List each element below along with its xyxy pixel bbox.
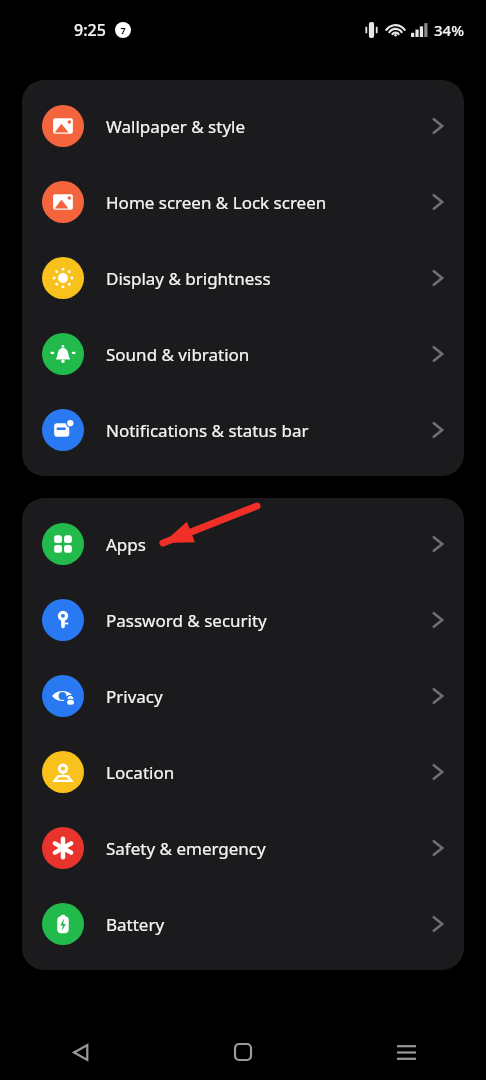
staticText: Notifications & status bar: [106, 419, 432, 442]
button[interactable]: Display & brightness: [22, 240, 464, 316]
button[interactable]: Sound & vibration: [22, 316, 464, 392]
staticText: Wallpaper & style: [106, 115, 432, 138]
staticText: 7: [120, 24, 126, 36]
staticText: Safety & emergency: [106, 837, 432, 860]
staticText: 9:25: [74, 19, 106, 41]
staticText: Apps: [106, 533, 432, 556]
button[interactable]: Location: [22, 734, 464, 810]
button[interactable]: Home: [221, 1030, 265, 1074]
button[interactable]: Battery: [22, 886, 464, 962]
button[interactable]: Privacy: [22, 658, 464, 734]
button[interactable]: Apps: [22, 506, 464, 582]
staticText: Home screen & Lock screen: [106, 191, 432, 214]
button[interactable]: Recents: [384, 1030, 428, 1074]
staticText: Display & brightness: [106, 267, 432, 290]
staticText: Location: [106, 761, 432, 784]
staticText: Sound & vibration: [106, 343, 432, 366]
button[interactable]: Password & security: [22, 582, 464, 658]
staticText: 34%: [434, 20, 464, 40]
button[interactable]: Safety & emergency: [22, 810, 464, 886]
staticText: Battery: [106, 913, 432, 936]
button[interactable]: Notifications & status bar: [22, 392, 464, 468]
button[interactable]: Home screen & Lock screen: [22, 164, 464, 240]
staticText: Settings: [27, 79, 107, 108]
staticText: Privacy: [106, 685, 432, 708]
button[interactable]: Wallpaper & style: [22, 88, 464, 164]
button[interactable]: Back: [58, 1030, 102, 1074]
staticText: Password & security: [106, 609, 432, 632]
